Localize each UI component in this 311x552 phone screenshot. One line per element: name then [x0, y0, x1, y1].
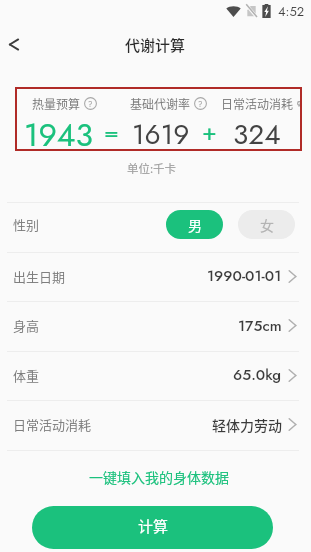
- button[interactable]: 计算: [32, 506, 273, 549]
- button[interactable]: 出生日期: [0, 253, 311, 301]
- staticText: 计算: [138, 515, 169, 537]
- staticText: 体重: [13, 366, 40, 385]
- button[interactable]: 体重: [0, 352, 311, 400]
- staticText: 性别: [13, 215, 40, 234]
- staticText: +: [202, 114, 217, 149]
- staticText: 出生日期: [13, 267, 66, 286]
- staticText: 身高: [13, 316, 40, 335]
- staticText: 基础代谢率: [130, 95, 191, 112]
- staticText: 一键填入我的身体数据: [89, 467, 229, 487]
- staticText: 1619: [132, 114, 190, 153]
- button[interactable]: 一键填入我的身体数据: [0, 467, 311, 489]
- staticText: 日常活动消耗: [13, 415, 92, 434]
- staticText: 日常活动消耗: [221, 95, 294, 112]
- staticText: ?: [198, 98, 203, 110]
- staticText: 1990-01-01: [207, 265, 282, 287]
- staticText: 热量预算: [32, 95, 81, 112]
- staticText: 4:52: [278, 2, 305, 21]
- staticText: 324: [233, 114, 281, 153]
- staticText: 男: [188, 215, 202, 235]
- staticText: ?: [88, 98, 93, 110]
- button[interactable]: 女: [238, 210, 295, 239]
- staticText: 轻体力劳动: [212, 415, 282, 435]
- staticText: ?: [297, 98, 302, 110]
- staticText: 代谢计算: [125, 34, 186, 56]
- button[interactable]: 身高: [0, 302, 311, 351]
- button[interactable]: 男: [166, 210, 223, 239]
- staticText: 175cm: [238, 315, 282, 337]
- staticText: 1943: [24, 112, 93, 151]
- staticText: =: [104, 114, 119, 149]
- staticText: 单位:千卡: [0, 160, 307, 177]
- staticText: 女: [260, 215, 274, 235]
- button[interactable]: Back: [2, 32, 26, 56]
- staticText: 65.0kg: [233, 364, 282, 386]
- button[interactable]: 日常活动消耗: [0, 401, 311, 450]
